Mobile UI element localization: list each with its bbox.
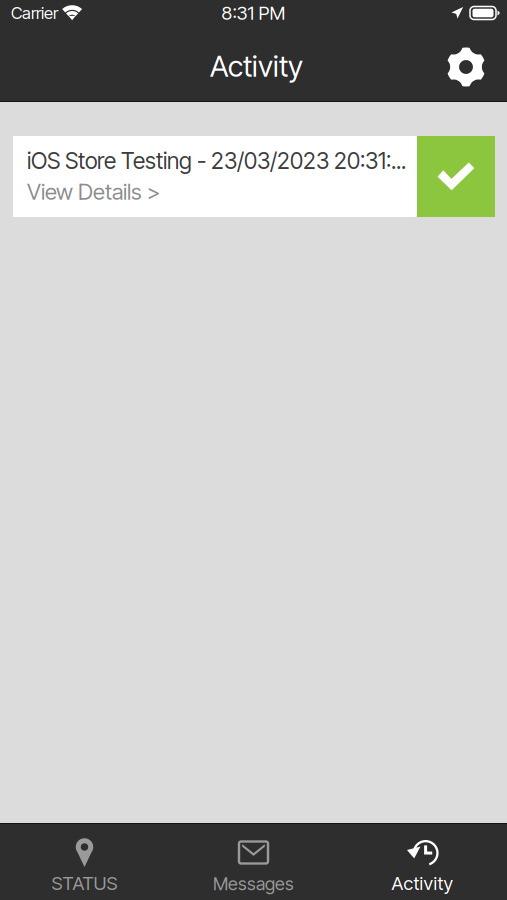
staticText: Messages bbox=[213, 873, 294, 894]
staticText: Activity bbox=[391, 872, 453, 894]
button[interactable]: STATUS bbox=[0, 823, 169, 900]
staticText: iOS Store Testing - 23/03/2023 20:31:... bbox=[27, 147, 406, 174]
button[interactable]: Activity bbox=[338, 823, 507, 900]
button[interactable]: iOS Store Testing - 23/03/2023 20:31:... bbox=[13, 136, 495, 217]
staticText: 8:31 PM bbox=[221, 2, 285, 24]
button[interactable]: Settings bbox=[435, 35, 497, 99]
staticText: Carrier bbox=[11, 3, 58, 23]
button[interactable]: Messages bbox=[169, 823, 338, 900]
staticText: STATUS bbox=[51, 872, 117, 894]
staticText: View Details > bbox=[27, 178, 161, 205]
staticText: Activity bbox=[210, 48, 303, 84]
